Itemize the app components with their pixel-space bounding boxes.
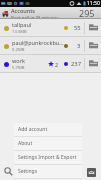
staticText: 295 <box>79 7 95 19</box>
button[interactable]: Folders <box>85 37 101 54</box>
staticText: 5.7MB <box>12 65 25 71</box>
staticText: 55 <box>74 24 81 32</box>
staticText: paul@punkrockbun... <box>12 39 64 46</box>
button[interactable]: work <box>0 57 84 71</box>
staticText: 5.2MB <box>12 47 25 53</box>
button[interactable]: paul@punkrockbun... <box>0 39 84 53</box>
staticText: 11:50 <box>87 0 100 7</box>
staticText: 2 <box>55 61 59 68</box>
button[interactable]: About <box>14 137 82 150</box>
button[interactable]: Search <box>3 166 14 177</box>
button[interactable]: Folders <box>85 55 101 72</box>
staticText: Next poll in 36 minutes <box>11 15 59 19</box>
button[interactable]: Settings Import & Export <box>14 151 82 164</box>
button[interactable]: Add account <box>14 123 82 136</box>
staticText: work <box>12 57 25 64</box>
staticText: Settings Import & Export <box>18 154 77 161</box>
staticText: About <box>18 140 33 147</box>
button[interactable]: Compose message <box>87 168 96 177</box>
staticText: Accounts <box>11 7 36 14</box>
button[interactable]: Accounts <box>0 7 101 19</box>
staticText: Add account <box>18 126 48 133</box>
staticText: Settings <box>18 168 38 175</box>
button[interactable]: Folders <box>85 19 101 36</box>
staticText: 13.5MB <box>12 29 27 35</box>
button[interactable]: tallpaul <box>0 21 84 35</box>
staticText: 237 <box>71 60 81 68</box>
button[interactable]: Settings <box>14 165 82 178</box>
staticText: tallpaul <box>12 21 32 28</box>
staticText: 3 <box>77 42 81 50</box>
